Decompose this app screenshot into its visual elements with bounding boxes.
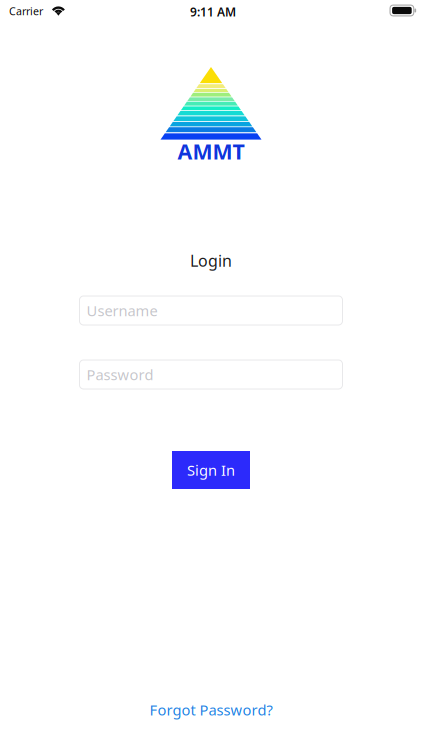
button[interactable]: Sign In (172, 451, 250, 489)
staticText: 9:11 AM (190, 4, 236, 20)
button[interactable]: Forgot Password? (0, 700, 422, 719)
staticText: Password (86, 365, 153, 384)
staticText: Forgot Password? (149, 700, 272, 719)
staticText: AMMT (177, 137, 244, 165)
staticText: Username (86, 301, 157, 320)
staticText: Sign In (187, 460, 235, 480)
staticText: Carrier (9, 4, 43, 18)
staticText: Login (190, 250, 232, 271)
